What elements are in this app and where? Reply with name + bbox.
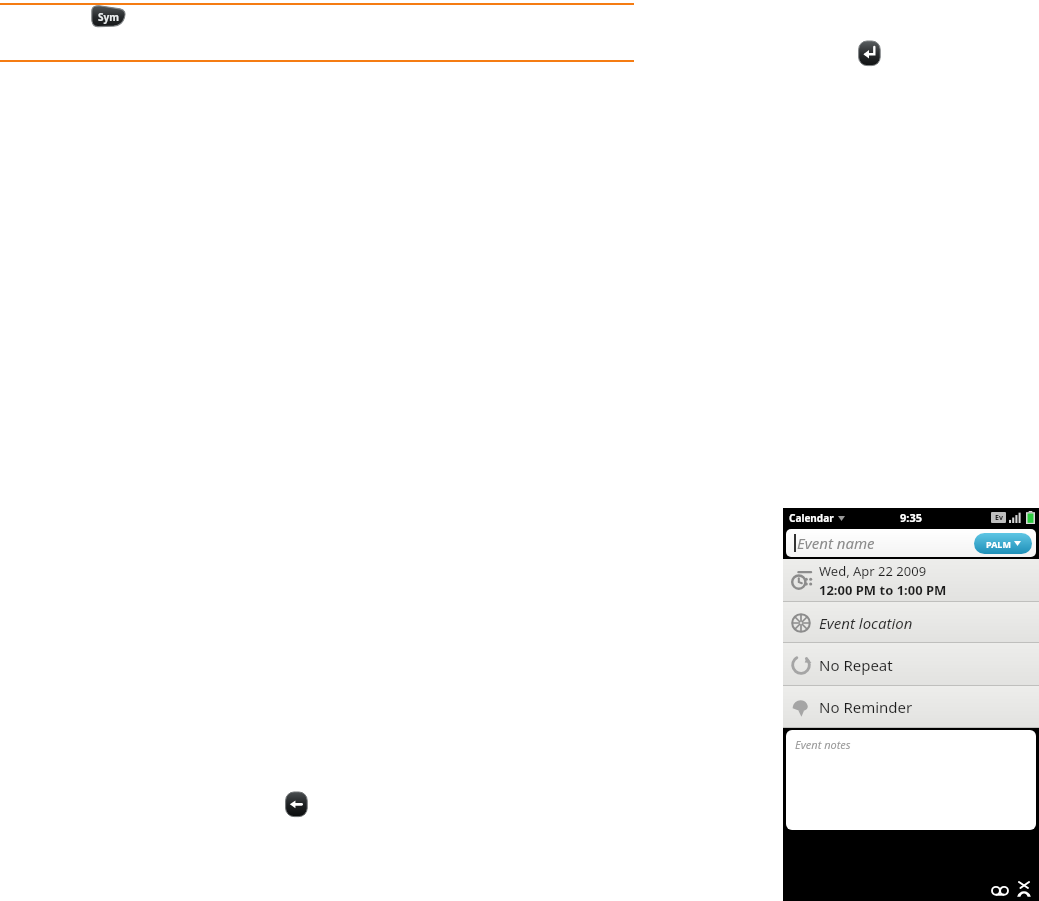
- button[interactable]: Calendar: [789, 511, 845, 525]
- staticText: No Reminder: [819, 697, 913, 717]
- button[interactable]: Sym key: [88, 5, 126, 29]
- button[interactable]: Back key: [282, 789, 310, 819]
- staticText: 12:00 PM to 1:00 PM: [819, 581, 947, 599]
- staticText: PALM: [986, 538, 1011, 550]
- staticText: No Repeat: [819, 655, 893, 675]
- other: Repeat: [790, 654, 812, 676]
- staticText: Event name: [797, 533, 875, 553]
- staticText: Event location: [819, 613, 913, 633]
- staticText: Event notes: [795, 737, 851, 752]
- staticText: Wed, Apr 22 2009: [819, 562, 927, 580]
- button[interactable]: Event notes: [786, 730, 1036, 830]
- button[interactable]: Event name: [786, 529, 1036, 557]
- staticText: 9:35: [900, 510, 922, 525]
- staticText: Calendar: [789, 511, 834, 525]
- button[interactable]: Voicemail: [991, 884, 1009, 895]
- staticText: Sym: [98, 10, 119, 24]
- button[interactable]: Date and time: [783, 559, 1039, 602]
- staticText: Ev: [995, 513, 1003, 523]
- button[interactable]: PALM: [974, 533, 1032, 554]
- button[interactable]: Event location: [783, 602, 1039, 643]
- button[interactable]: Repeat: [783, 643, 1039, 686]
- other: Reminder: [790, 696, 812, 718]
- button[interactable]: Enter key: [855, 38, 883, 68]
- button[interactable]: Missed call: [1015, 881, 1033, 897]
- other: Date and time: [790, 570, 812, 592]
- other: Event location: [790, 612, 812, 634]
- button[interactable]: Reminder: [783, 686, 1039, 728]
